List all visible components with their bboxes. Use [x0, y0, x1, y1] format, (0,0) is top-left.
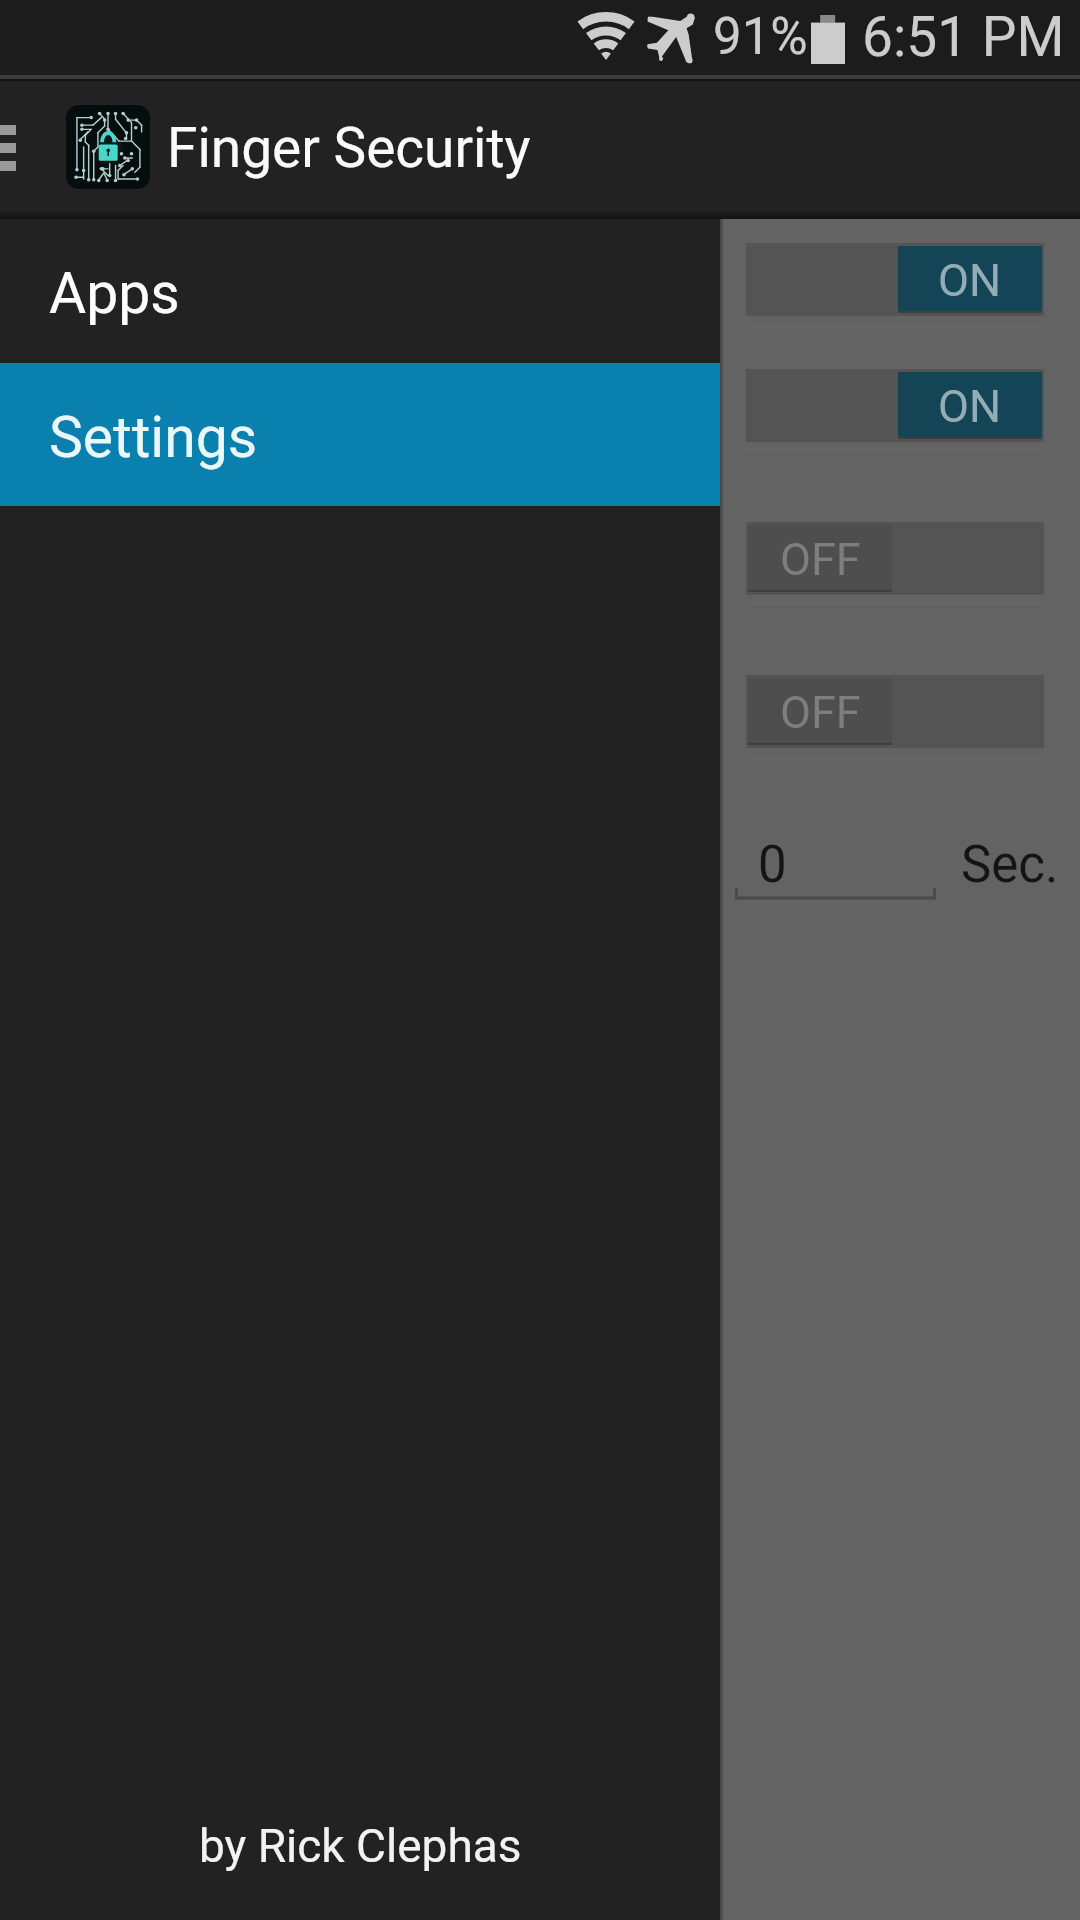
staticText: Settings [49, 404, 258, 471]
button[interactable]: OFF [746, 675, 1044, 748]
staticText: by Rick Clephas [199, 1819, 522, 1873]
staticText: Finger Security [167, 116, 531, 180]
staticText: 0 [758, 835, 787, 895]
button[interactable]: Settings [0, 363, 720, 506]
button[interactable]: Apps [0, 219, 720, 363]
button[interactable]: Delay in seconds [735, 828, 936, 900]
staticText: ON [938, 254, 1002, 307]
button[interactable]: ON [746, 369, 1044, 442]
button[interactable]: Open navigation drawer [0, 125, 16, 171]
staticText: ON [938, 380, 1002, 433]
staticText: 6:51 PM [862, 5, 1065, 69]
staticText: OFF [780, 686, 861, 739]
button[interactable]: ON [746, 243, 1044, 316]
button[interactable]: OFF [746, 522, 1044, 595]
staticText: Apps [49, 260, 180, 327]
staticText: Sec. [961, 835, 1059, 895]
staticText: OFF [780, 533, 861, 586]
staticText: 91% [713, 7, 808, 67]
